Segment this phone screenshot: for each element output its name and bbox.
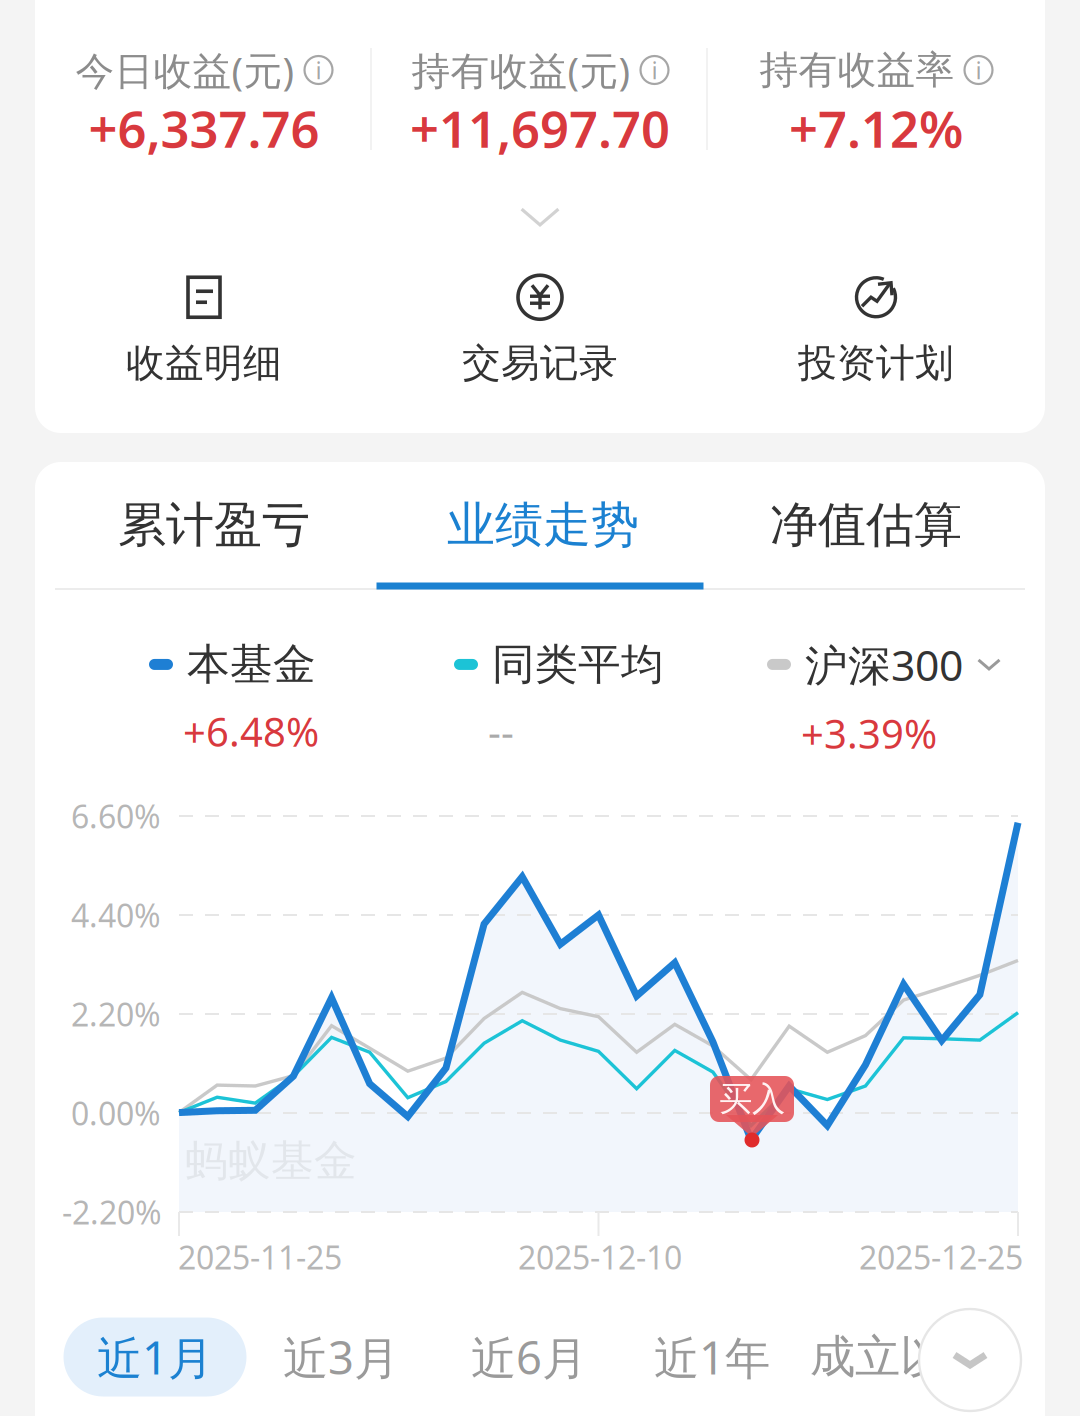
staticText: 2025-11-25	[178, 1236, 342, 1278]
staticText: 收益明细	[126, 339, 282, 387]
staticText: 今日收益(元)	[75, 44, 294, 96]
button[interactable]: 近3月	[250, 1315, 432, 1399]
staticText: 同类平均	[492, 638, 664, 691]
staticText: i	[315, 54, 321, 86]
button[interactable]: 近1年	[621, 1315, 803, 1399]
button[interactable]: 近1月	[63, 1317, 246, 1396]
button[interactable]: 净值估算	[701, 472, 1031, 578]
staticText: 近1月	[97, 1327, 213, 1387]
button[interactable]: 更多区间	[919, 1309, 1021, 1411]
button[interactable]: 业绩走势	[378, 472, 708, 578]
staticText: i	[651, 54, 657, 86]
button[interactable]: 同类平均	[454, 630, 714, 766]
button[interactable]: 收益明细	[54, 269, 354, 393]
staticText: 近1年	[654, 1327, 770, 1387]
staticText: 0.00%	[71, 1092, 161, 1134]
staticText: 业绩走势	[447, 495, 639, 554]
staticText: 沪深300	[805, 636, 963, 693]
staticText: 2.20%	[71, 993, 161, 1035]
button[interactable]: 成立以来	[809, 1315, 991, 1399]
staticText: +11,697.70	[410, 94, 670, 162]
button[interactable]: 近6月	[438, 1315, 620, 1399]
staticText: 近6月	[471, 1327, 587, 1387]
staticText: 净值估算	[770, 495, 962, 554]
staticText: 本基金	[187, 638, 316, 691]
staticText: 成立以来	[810, 1329, 990, 1385]
staticText: 2025-12-25	[859, 1236, 1023, 1278]
staticText: +6,337.76	[88, 94, 319, 162]
button[interactable]: 展开更多	[470, 179, 610, 255]
staticText: 投资计划	[798, 339, 954, 387]
staticText: 持有收益率	[759, 46, 954, 94]
staticText: 蚂蚁基金	[185, 1135, 357, 1187]
staticText: 持有收益(元)	[411, 44, 630, 96]
staticText: 2025-12-10	[518, 1236, 682, 1278]
staticText: 累计盈亏	[118, 495, 310, 554]
button[interactable]: 沪深300	[767, 628, 1027, 768]
staticText: 买入	[719, 1078, 785, 1119]
staticText: --	[488, 705, 514, 758]
button[interactable]: 投资计划	[726, 269, 1026, 393]
staticText: i	[975, 54, 981, 86]
staticText: -2.20%	[62, 1191, 162, 1233]
button[interactable]: 本基金	[149, 630, 409, 766]
button[interactable]: 交易记录	[390, 269, 690, 393]
staticText: +3.39%	[801, 707, 937, 760]
staticText: 6.60%	[71, 795, 161, 837]
staticText: 交易记录	[462, 339, 618, 387]
staticText: 4.40%	[71, 894, 161, 936]
staticText: 近3月	[283, 1327, 399, 1387]
button[interactable]: 累计盈亏	[49, 472, 379, 578]
staticText: +7.12%	[789, 94, 963, 162]
staticText: +6.48%	[183, 705, 319, 758]
